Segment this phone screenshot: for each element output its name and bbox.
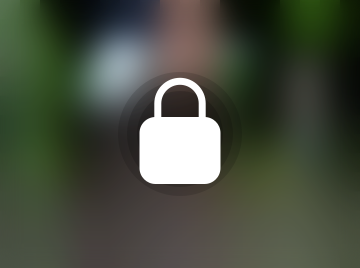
button[interactable]: Locked content (0, 0, 360, 268)
